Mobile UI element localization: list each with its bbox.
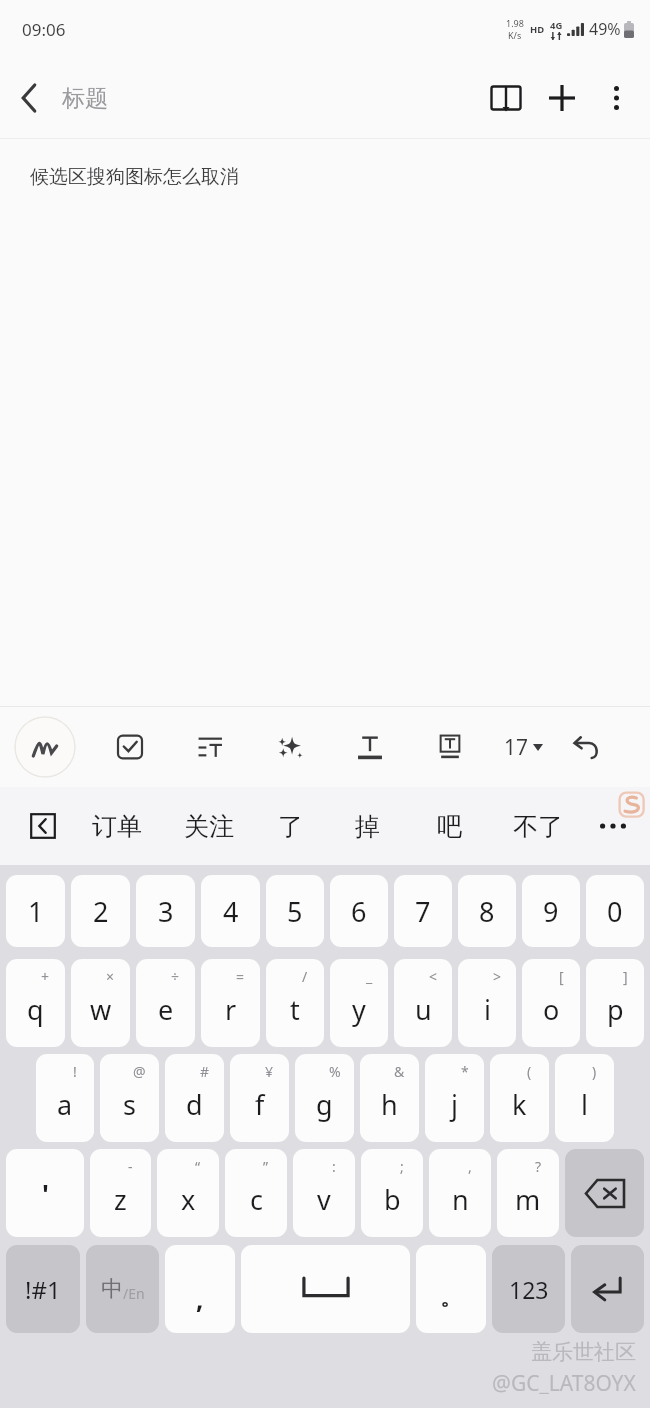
staticText: z	[114, 1181, 127, 1218]
button[interactable]: '	[6, 1149, 84, 1237]
staticText: v	[317, 1181, 331, 1218]
staticText: )	[592, 1062, 597, 1081]
button[interactable]: Text style	[410, 716, 490, 778]
button[interactable]: &	[360, 1054, 419, 1142]
button[interactable]: !#1	[6, 1245, 80, 1333]
staticText: 49%	[589, 18, 621, 40]
button[interactable]: 吧	[408, 787, 490, 865]
staticText: ”	[263, 1157, 269, 1176]
staticText: '	[42, 1176, 49, 1211]
staticText: 7	[415, 893, 431, 930]
button[interactable]: 3	[136, 875, 195, 947]
button[interactable]: Reading mode	[478, 70, 534, 126]
button[interactable]: #	[165, 1054, 224, 1142]
button[interactable]: 9	[522, 875, 580, 947]
button[interactable]: Space	[241, 1245, 410, 1333]
staticText: ;	[400, 1157, 404, 1176]
button[interactable]: )	[555, 1054, 614, 1142]
staticText: x	[181, 1181, 196, 1218]
button[interactable]: 了	[255, 787, 326, 865]
staticText: l	[581, 1086, 588, 1123]
button[interactable]: ”	[225, 1149, 287, 1237]
button[interactable]: 中	[86, 1245, 159, 1333]
button[interactable]: ;	[361, 1149, 423, 1237]
staticText: 盖乐世社区	[531, 1339, 636, 1365]
staticText: ,	[468, 1157, 472, 1176]
button[interactable]: Checklist	[90, 716, 170, 778]
button[interactable]: ¥	[230, 1054, 289, 1142]
staticText: q	[27, 991, 44, 1028]
button[interactable]: Undo	[556, 716, 616, 778]
button[interactable]: Previous candidates	[16, 799, 70, 853]
button[interactable]: 6	[330, 875, 388, 947]
button[interactable]: ,	[429, 1149, 491, 1237]
button[interactable]: -	[90, 1149, 151, 1237]
button[interactable]: Text format	[330, 716, 410, 778]
staticText: 123	[509, 1274, 549, 1305]
button[interactable]: @	[100, 1054, 159, 1142]
button[interactable]: 掉	[326, 787, 408, 865]
button[interactable]: 7	[394, 875, 452, 947]
button[interactable]: Enter	[571, 1245, 644, 1333]
button[interactable]: 2	[71, 875, 130, 947]
staticText: 0	[607, 893, 623, 930]
button[interactable]: 5	[266, 875, 324, 947]
staticText: b	[384, 1181, 401, 1218]
button[interactable]: 0	[586, 875, 644, 947]
button[interactable]: 关注	[163, 787, 255, 865]
button[interactable]: 1	[6, 875, 65, 947]
button[interactable]: 8	[458, 875, 516, 947]
staticText: h	[381, 1086, 398, 1123]
staticText: :	[332, 1157, 336, 1176]
button[interactable]: 订单	[70, 787, 163, 865]
button[interactable]: 不了	[490, 787, 586, 865]
button[interactable]: ?	[497, 1149, 559, 1237]
staticText: 4	[223, 893, 239, 930]
button[interactable]: 4	[201, 875, 260, 947]
staticText: m	[515, 1181, 541, 1218]
button[interactable]: ×	[71, 959, 130, 1047]
button[interactable]: ]	[586, 959, 644, 1047]
staticText: (	[527, 1062, 532, 1081]
button[interactable]: Paragraph style	[170, 716, 250, 778]
button[interactable]: More candidates	[586, 787, 640, 865]
button[interactable]: “	[157, 1149, 219, 1237]
button[interactable]: ÷	[136, 959, 195, 1047]
button[interactable]: =	[201, 959, 260, 1047]
staticText: 8	[479, 893, 495, 930]
staticText: ×	[106, 967, 115, 986]
button[interactable]: Handwriting	[14, 716, 76, 778]
button[interactable]: <	[394, 959, 452, 1047]
button[interactable]: !	[36, 1054, 94, 1142]
staticText: u	[415, 991, 432, 1028]
button[interactable]: /	[266, 959, 324, 1047]
staticText: +	[41, 967, 50, 986]
staticText: 17	[504, 733, 529, 762]
button[interactable]: >	[458, 959, 516, 1047]
button[interactable]: *	[425, 1054, 484, 1142]
staticText: 中	[101, 1275, 123, 1303]
button[interactable]: Delete	[565, 1149, 644, 1237]
staticText: >	[493, 967, 502, 986]
button[interactable]: Add	[534, 70, 590, 126]
staticText: 吧	[437, 811, 462, 842]
button[interactable]: :	[293, 1149, 355, 1237]
staticText: %	[329, 1062, 341, 1081]
button[interactable]: ,	[165, 1245, 235, 1333]
button[interactable]: 17	[490, 716, 556, 778]
staticText: 1.98	[506, 17, 524, 29]
staticText: @	[133, 1062, 146, 1081]
button[interactable]: 。	[416, 1245, 486, 1333]
button[interactable]: (	[490, 1054, 549, 1142]
button[interactable]: %	[295, 1054, 354, 1142]
staticText: 了	[278, 811, 303, 842]
button[interactable]: More options	[590, 72, 642, 124]
staticText: c	[250, 1181, 263, 1218]
button[interactable]: [	[522, 959, 580, 1047]
button[interactable]: AI assist	[250, 716, 330, 778]
staticText: &	[394, 1062, 405, 1081]
button[interactable]: +	[6, 959, 65, 1047]
button[interactable]: 123	[492, 1245, 565, 1333]
button[interactable]: _	[330, 959, 388, 1047]
button[interactable]: Back	[0, 69, 58, 127]
